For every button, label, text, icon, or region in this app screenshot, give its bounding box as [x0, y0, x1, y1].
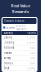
staticText: Closing [3, 41, 14, 44]
staticText: Rewards [12, 9, 29, 14]
staticText: 5,000 [6, 26, 15, 29]
staticText: 350 [29, 61, 35, 65]
staticText: Review [3, 51, 11, 55]
staticText: Real Value [11, 3, 30, 8]
staticText: 100 [29, 56, 35, 60]
staticText: 150 [29, 51, 35, 55]
staticText: Rewards balance [4, 19, 25, 23]
staticText: 1,200 [26, 36, 35, 39]
staticText: Points [26, 31, 35, 35]
staticText: Bonus [3, 61, 12, 65]
staticText: 2,400 [26, 41, 35, 44]
staticText: points available [16, 24, 27, 31]
staticText: Activity [3, 31, 12, 35]
staticText: Total [3, 66, 9, 70]
staticText: 800 [29, 46, 35, 49]
staticText: Referral [3, 46, 14, 49]
staticText: 5,000 [26, 66, 35, 70]
staticText: Survey [3, 56, 10, 60]
staticText: Listing [3, 36, 12, 39]
